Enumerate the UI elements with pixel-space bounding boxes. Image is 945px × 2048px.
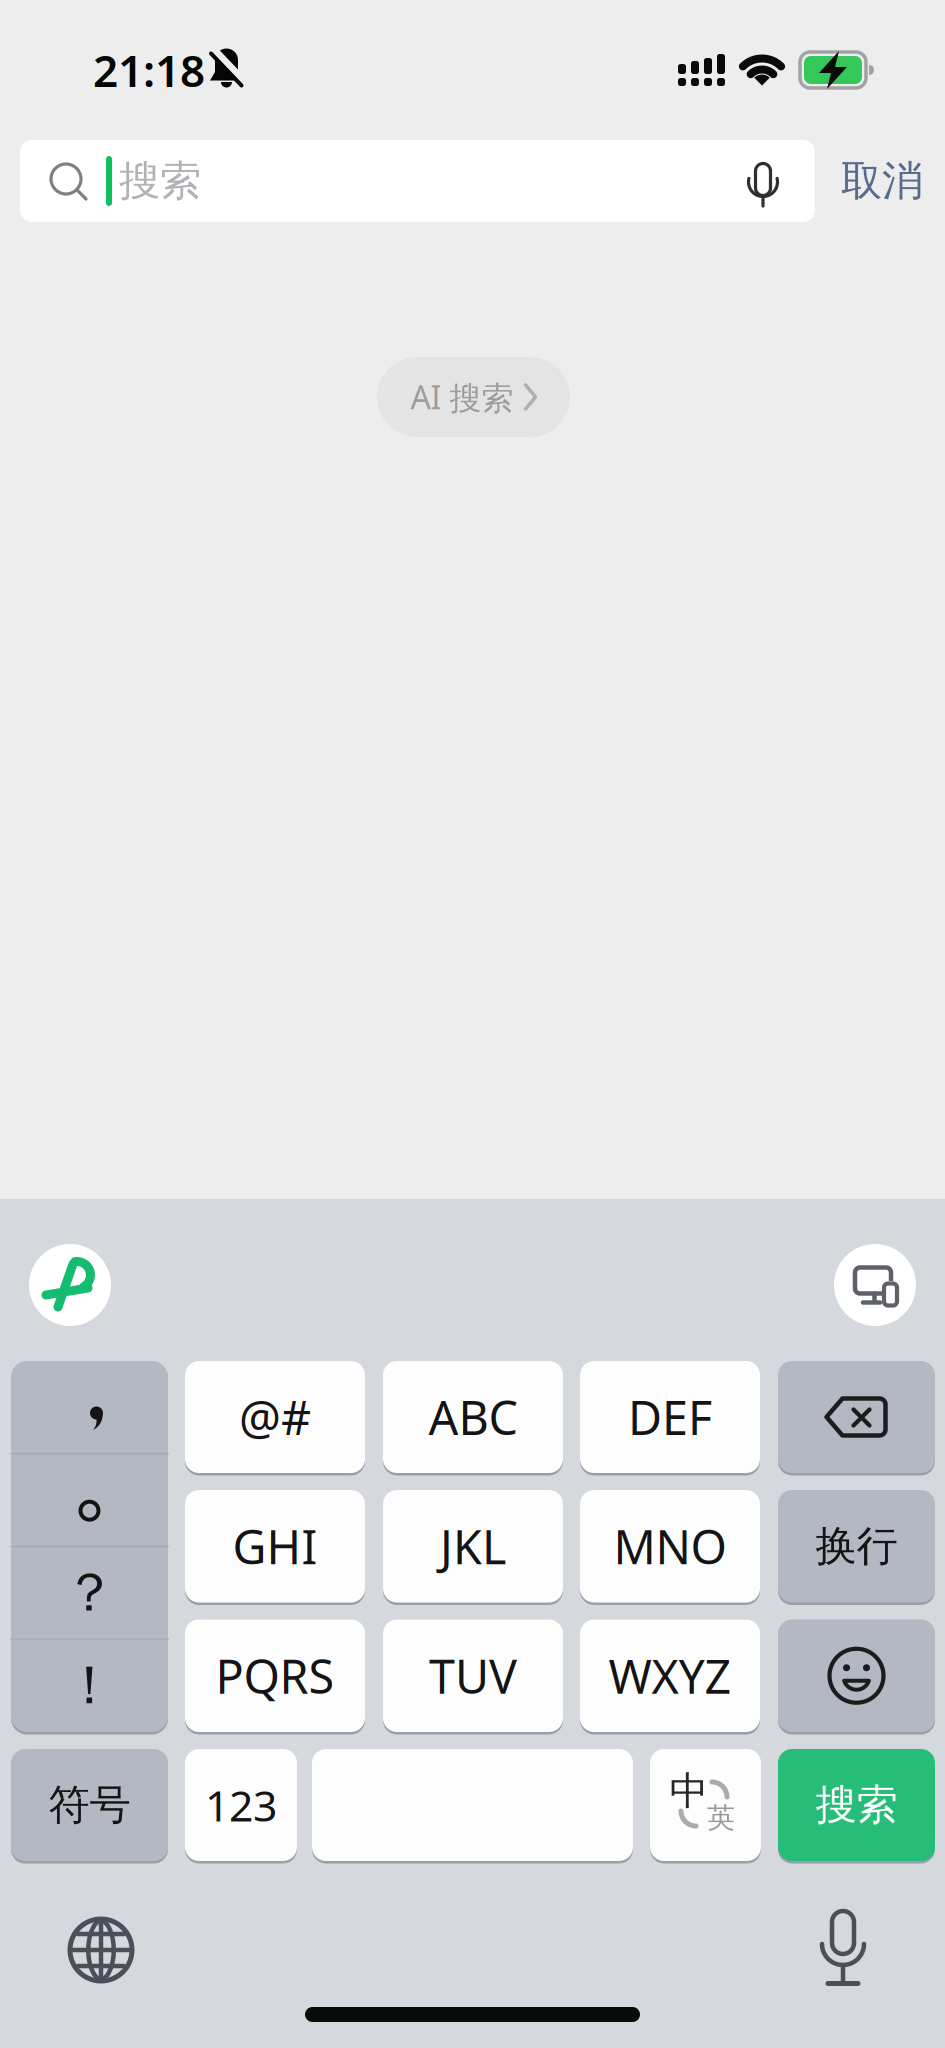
button[interactable]: @# [185, 1361, 365, 1473]
button[interactable]: 符号 [11, 1749, 168, 1861]
button[interactable]: ， [11, 1361, 168, 1454]
button[interactable]: 空格 [312, 1749, 633, 1861]
staticText: 中 [669, 1767, 708, 1815]
button[interactable]: 跨设备输入 [834, 1244, 916, 1326]
staticText: 取消 [841, 156, 923, 206]
staticText: 符号 [48, 1780, 130, 1830]
button[interactable]: 删除 [778, 1361, 935, 1473]
button[interactable]: ！ [11, 1639, 168, 1732]
button[interactable]: 语音搜索 [733, 151, 793, 211]
button[interactable]: ABC [383, 1361, 563, 1473]
button[interactable]: 123 [185, 1749, 297, 1861]
button[interactable]: AI 搜索 [377, 357, 570, 437]
staticText: TUV [429, 1645, 517, 1707]
button[interactable]: 搜索 [20, 140, 815, 222]
staticText: 123 [205, 1777, 277, 1833]
button[interactable]: 语音输入 [808, 1911, 878, 1985]
button[interactable]: DEF [580, 1361, 760, 1473]
staticText: ABC [428, 1386, 517, 1448]
button[interactable]: ？ [11, 1546, 168, 1639]
button[interactable]: TUV [383, 1619, 563, 1732]
button[interactable]: 。 [11, 1454, 168, 1546]
button[interactable]: JKL [383, 1490, 563, 1602]
staticText: JKL [440, 1515, 506, 1577]
staticText: AI 搜索 [410, 376, 513, 418]
staticText: 21:18 [93, 41, 205, 99]
button[interactable]: 切换键盘 [66, 1915, 136, 1985]
staticText: PQRS [215, 1645, 334, 1707]
staticText: GHI [232, 1515, 317, 1577]
button[interactable]: 换行 [778, 1490, 935, 1602]
button[interactable]: 输入法 [29, 1244, 111, 1326]
button[interactable]: 搜索 [778, 1749, 935, 1861]
staticText: 换行 [815, 1521, 897, 1572]
staticText: DEF [628, 1386, 712, 1448]
staticText: 搜索 [815, 1780, 897, 1830]
button[interactable]: PQRS [185, 1619, 365, 1732]
button[interactable]: 取消 [822, 140, 942, 222]
staticText: 英 [707, 1801, 735, 1835]
staticText: ！ [63, 1653, 116, 1718]
button[interactable]: WXYZ [580, 1619, 760, 1732]
staticText: WXYZ [608, 1645, 731, 1707]
button[interactable]: 表情 [778, 1619, 935, 1732]
button[interactable]: MNO [580, 1490, 760, 1602]
button[interactable]: 中英切换 [650, 1749, 761, 1861]
staticText: MNO [613, 1515, 726, 1577]
staticText: @# [239, 1386, 311, 1448]
button[interactable]: GHI [185, 1490, 365, 1602]
staticText: ？ [63, 1560, 116, 1626]
staticText: 搜索 [119, 156, 201, 206]
